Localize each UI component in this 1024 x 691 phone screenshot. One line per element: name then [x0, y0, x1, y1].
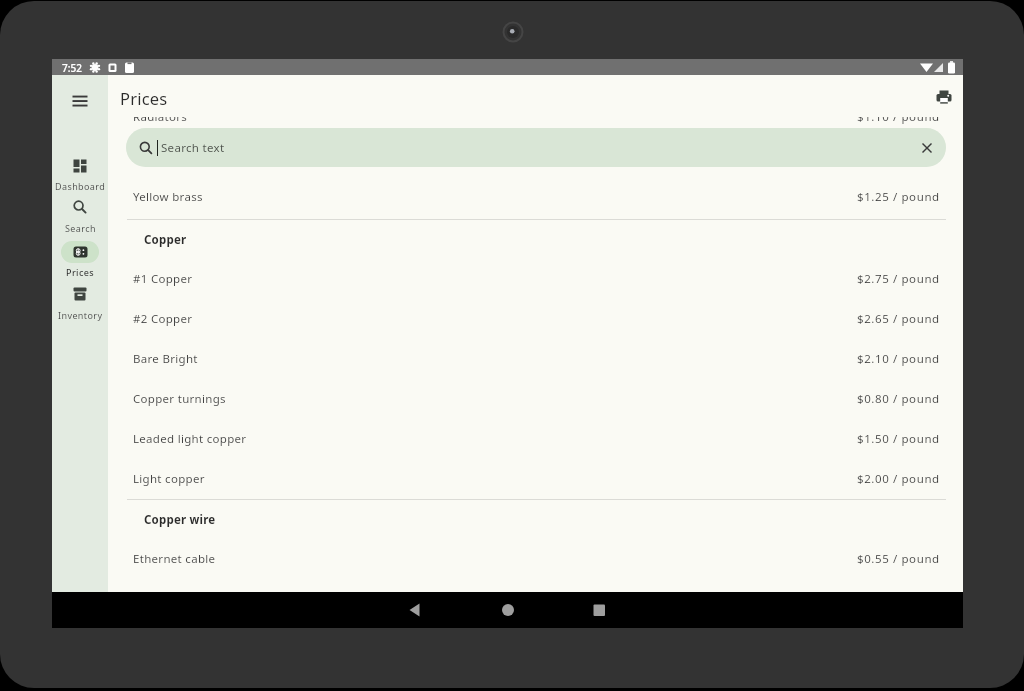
button[interactable]: Search text: [126, 128, 946, 167]
staticText: Copper wire: [144, 512, 216, 528]
staticText: Copper turnings: [133, 391, 226, 407]
staticText: $2.65 / pound: [857, 311, 940, 327]
staticText: $2.75 / pound: [857, 271, 940, 287]
button[interactable]: [70, 91, 90, 111]
staticText: $2.10 / pound: [857, 351, 940, 367]
staticText: #1 Copper: [133, 271, 193, 287]
staticText: $1.50 / pound: [857, 431, 940, 447]
button[interactable]: #1 Copper: [108, 259, 963, 299]
staticText: Light copper: [133, 471, 205, 487]
button[interactable]: Inventory: [52, 287, 108, 321]
staticText: $0.80 / pound: [857, 391, 940, 407]
staticText: 7:52: [62, 61, 82, 75]
staticText: Search: [65, 222, 96, 234]
staticText: $1.10 / pound: [857, 109, 940, 125]
button[interactable]: Ethernet cable: [108, 539, 963, 579]
staticText: Search text: [161, 140, 225, 156]
button[interactable]: Search: [52, 200, 108, 234]
staticText: Dashboard: [55, 180, 106, 192]
staticText: $0.55 / pound: [857, 551, 940, 567]
staticText: Radiators: [133, 109, 188, 125]
button[interactable]: Radiators: [108, 97, 963, 137]
staticText: Copper: [144, 232, 187, 248]
staticText: Yellow brass: [133, 189, 203, 205]
button[interactable]: [935, 89, 953, 107]
staticText: Leaded light copper: [133, 431, 247, 447]
staticText: Prices: [66, 266, 95, 278]
staticText: Bare Bright: [133, 351, 198, 367]
button[interactable]: Prices: [52, 241, 108, 278]
staticText: Ethernet cable: [133, 551, 216, 567]
staticText: $1.25 / pound: [857, 189, 940, 205]
button[interactable]: Light copper: [108, 459, 963, 499]
staticText: Inventory: [58, 309, 103, 321]
staticText: $2.00 / pound: [857, 471, 940, 487]
button[interactable]: #2 Copper: [108, 299, 963, 339]
button[interactable]: Copper turnings: [108, 379, 963, 419]
staticText: Prices: [120, 87, 168, 109]
button[interactable]: Leaded light copper: [108, 419, 963, 459]
button[interactable]: Dashboard: [52, 159, 108, 192]
button[interactable]: Yellow brass: [108, 177, 963, 217]
button[interactable]: [355, 592, 659, 628]
staticText: #2 Copper: [133, 311, 193, 327]
button[interactable]: Bare Bright: [108, 339, 963, 379]
